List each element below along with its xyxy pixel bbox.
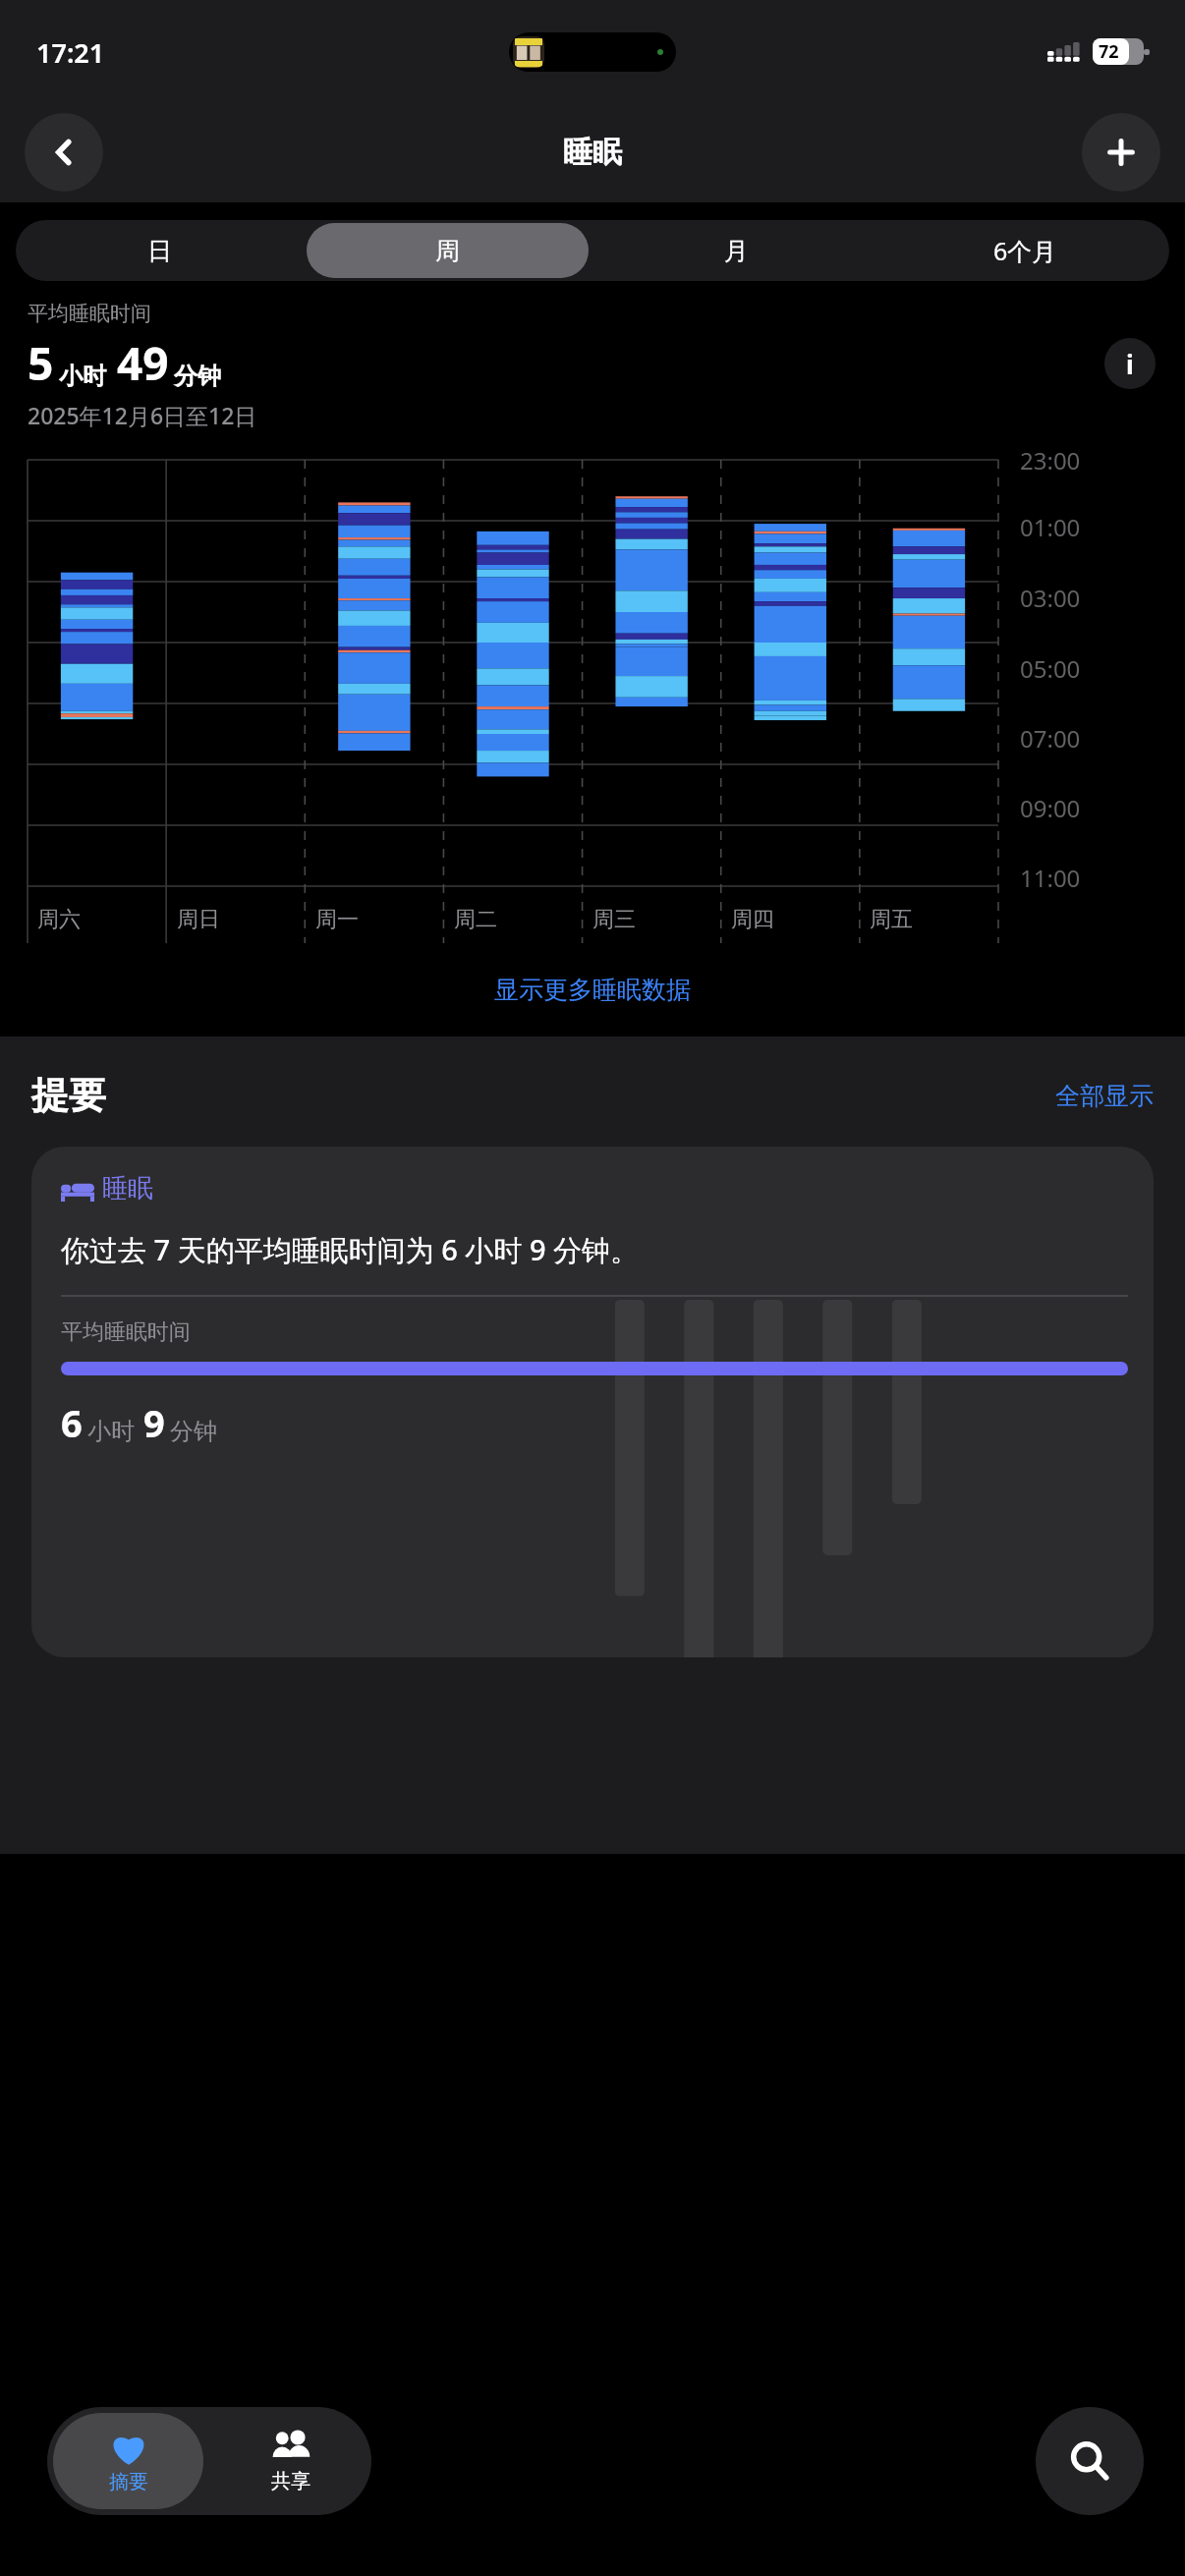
staticText: 6 (61, 1397, 83, 1448)
staticText: 分钟 (174, 362, 221, 391)
staticText: 平均睡眠时间 (61, 1318, 191, 1346)
staticText: 周五 (870, 906, 913, 933)
staticText: 17:21 (36, 34, 105, 71)
staticText: 月 (724, 236, 749, 266)
staticText: 你过去 7 天的平均睡眠时间为 6 小时 9 分钟。 (61, 1230, 640, 1269)
button[interactable]: 6个月 (883, 223, 1166, 278)
staticText: 平均睡眠时间 (28, 301, 151, 326)
staticText: 周四 (731, 906, 774, 933)
button[interactable]: 周 (307, 223, 589, 278)
staticText: i (1126, 347, 1134, 381)
button[interactable]: 显示更多睡眠数据 (0, 969, 1185, 1011)
staticText: 日 (147, 236, 172, 266)
staticText: 摘要 (109, 2470, 148, 2494)
staticText: 01:00 (1020, 511, 1081, 543)
staticText: 72 (1099, 39, 1119, 64)
staticText: 小时 (87, 1417, 135, 1446)
staticText: 小时 (59, 362, 106, 391)
staticText: 03:00 (1020, 582, 1081, 614)
button[interactable]: 共享 (209, 2407, 371, 2515)
button[interactable]: Add (1082, 113, 1160, 192)
staticText: 睡眠 (102, 1172, 153, 1204)
staticText: 5 (28, 332, 54, 394)
button[interactable]: 全部显示 (1055, 1081, 1154, 1111)
staticText: 05:00 (1020, 652, 1081, 685)
button[interactable]: Info (1104, 338, 1156, 389)
staticText: 9 (143, 1397, 165, 1448)
button[interactable]: Search (1036, 2407, 1144, 2515)
staticText: 全部显示 (1055, 1081, 1154, 1111)
staticText: 睡眠 (563, 134, 622, 171)
staticText: 共享 (271, 2469, 310, 2493)
button[interactable]: Back (25, 113, 103, 192)
staticText: 09:00 (1020, 792, 1081, 824)
staticText: 周六 (37, 906, 81, 933)
staticText: 提要 (31, 1072, 106, 1119)
staticText: 49 (117, 332, 169, 394)
button[interactable]: 摘要 (53, 2413, 203, 2509)
button[interactable]: 月 (594, 223, 877, 278)
staticText: 周一 (315, 906, 359, 933)
button[interactable]: 日 (19, 223, 301, 278)
staticText: 23:00 (1020, 444, 1081, 476)
button[interactable]: 睡眠 (31, 1147, 1154, 1657)
staticText: 分钟 (170, 1417, 217, 1446)
staticText: 周日 (177, 906, 220, 933)
staticText: 6个月 (993, 234, 1057, 267)
staticText: 2025年12月6日至12日 (28, 400, 257, 430)
staticText: 周二 (454, 906, 497, 933)
staticText: 11:00 (1020, 862, 1081, 894)
staticText: 显示更多睡眠数据 (494, 975, 691, 1005)
staticText: 07:00 (1020, 722, 1081, 755)
staticText: 周三 (592, 906, 636, 933)
staticText: 周 (435, 236, 460, 266)
